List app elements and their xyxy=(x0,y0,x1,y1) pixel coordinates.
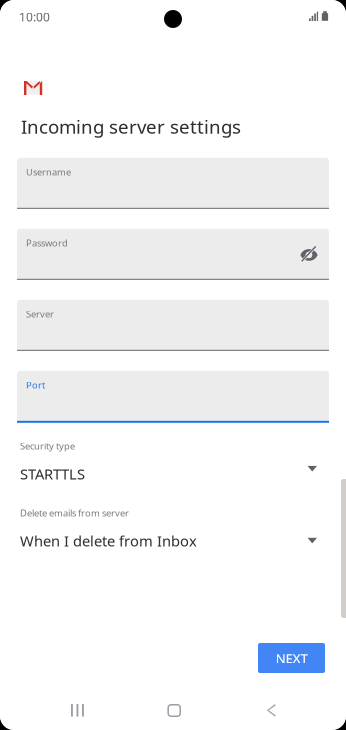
staticText: When I delete from Inbox xyxy=(20,531,197,551)
button[interactable]: Home xyxy=(0,686,346,730)
button[interactable]: NEXT xyxy=(258,643,325,673)
button[interactable]: Recent apps xyxy=(0,686,346,730)
staticText: Server xyxy=(26,308,54,320)
staticText: NEXT xyxy=(275,649,307,667)
staticText: STARTTLS xyxy=(20,464,85,484)
button[interactable]: Back xyxy=(0,686,346,730)
button[interactable]: Show password xyxy=(300,244,318,263)
button[interactable]: Security type xyxy=(0,440,326,484)
staticText: Username xyxy=(26,166,71,178)
staticText: Security type xyxy=(20,440,75,452)
staticText: Port xyxy=(26,379,45,391)
staticText: Delete emails from server xyxy=(20,507,129,519)
button[interactable]: Delete emails from server xyxy=(0,507,326,551)
staticText: Password xyxy=(26,237,68,249)
staticText: Incoming server settings xyxy=(21,114,241,139)
staticText: 10:00 xyxy=(19,9,50,25)
